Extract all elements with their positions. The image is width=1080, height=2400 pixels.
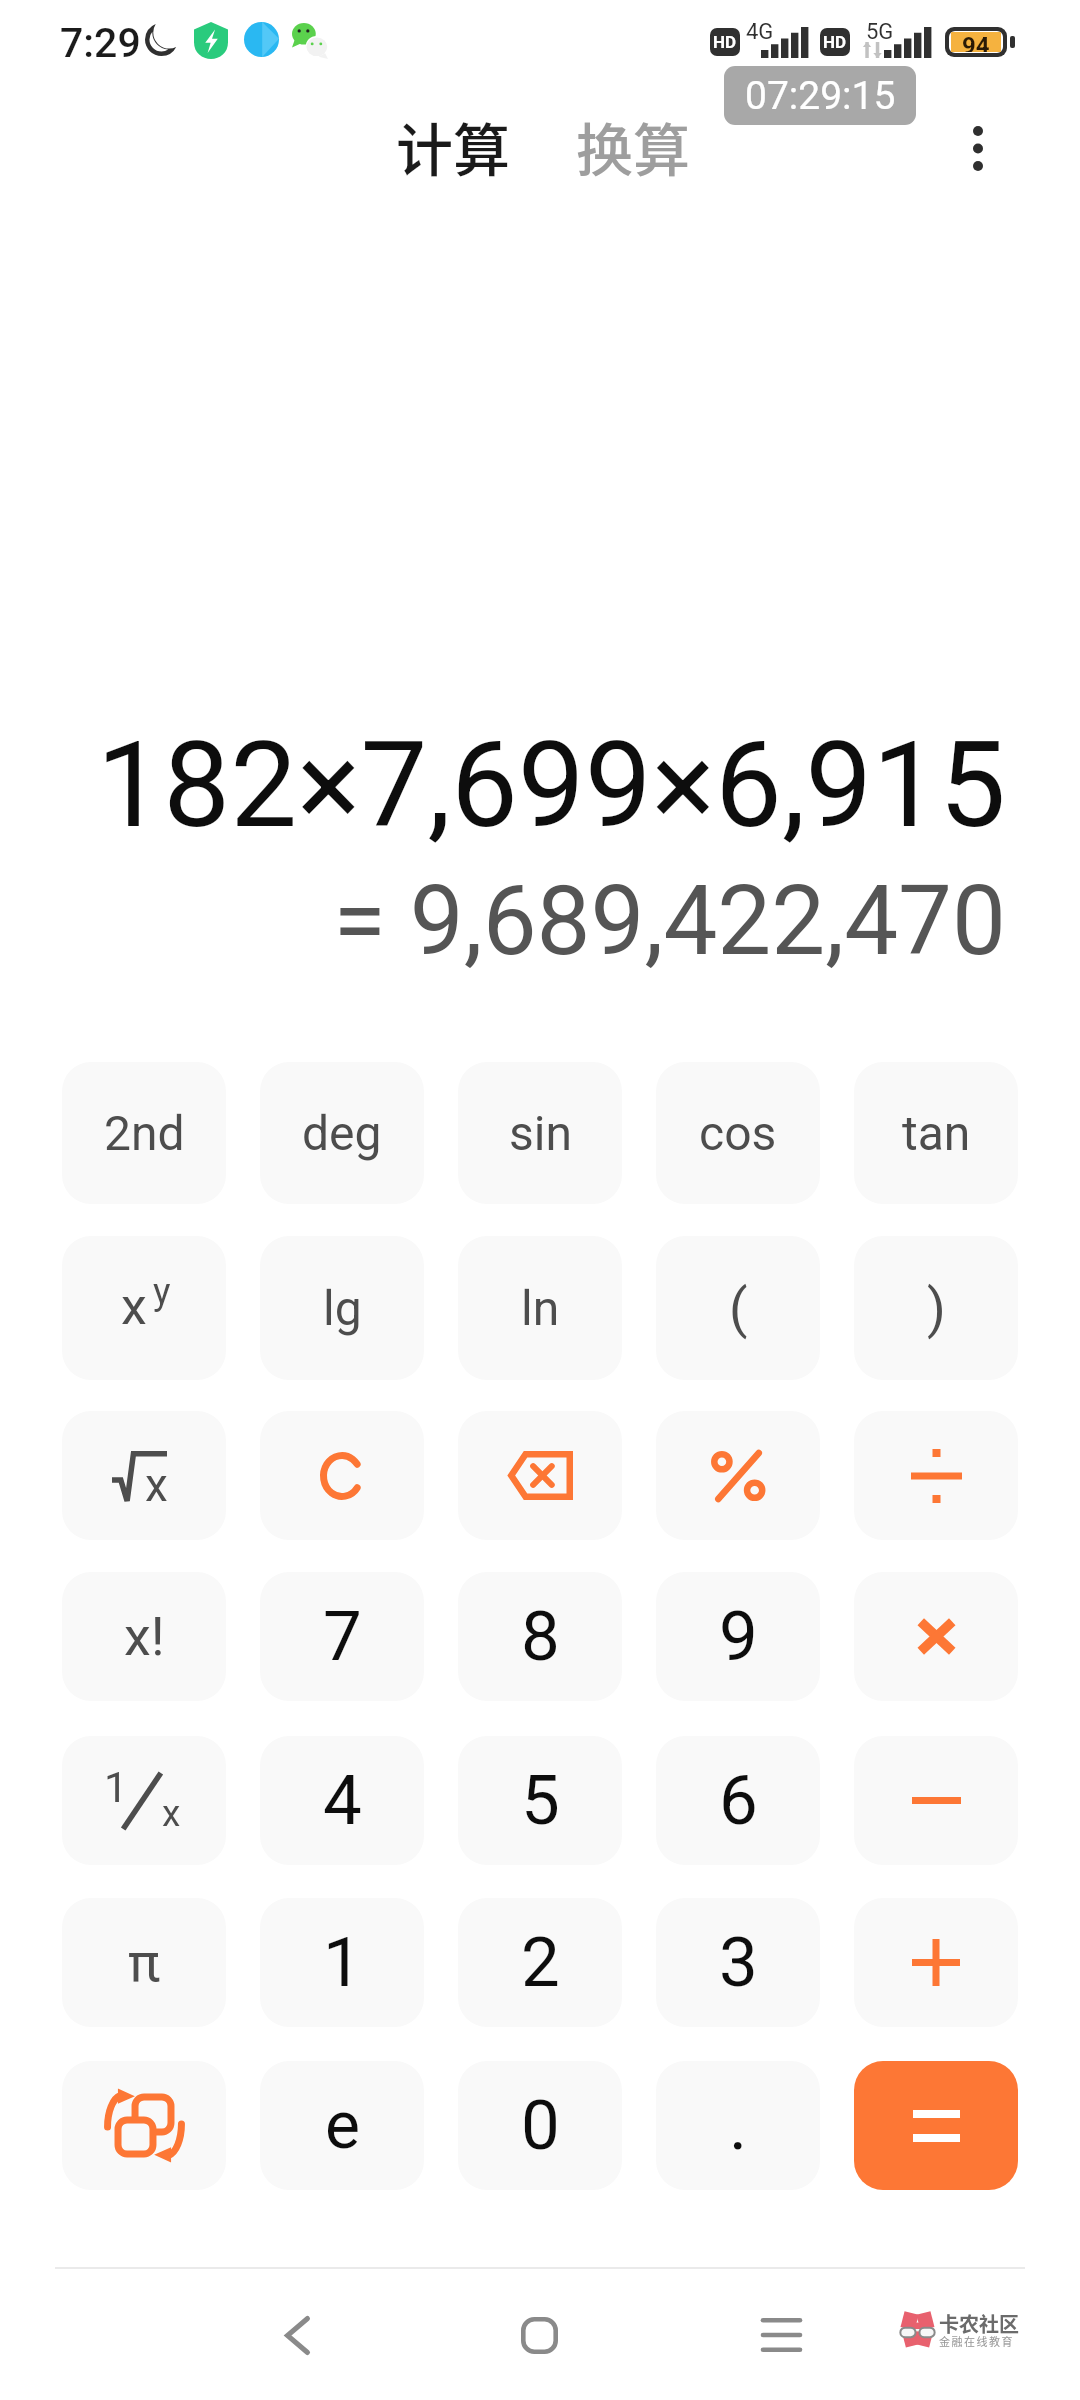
staticText: y xyxy=(153,1270,171,1313)
staticText: . xyxy=(729,2085,748,2166)
button[interactable]: Minus xyxy=(854,1736,1018,1865)
button[interactable]: 3 xyxy=(656,1898,820,2027)
staticText: 07:29:15 xyxy=(745,73,896,119)
button[interactable]: Plus xyxy=(854,1898,1018,2027)
button[interactable]: 计算 xyxy=(388,95,518,198)
button[interactable]: Divide xyxy=(854,1411,1018,1540)
button[interactable]: 2 xyxy=(458,1898,622,2027)
staticText: x xyxy=(145,1458,168,1512)
staticText: HD xyxy=(713,32,737,52)
staticText: x! xyxy=(124,1605,165,1668)
button[interactable]: Square root xyxy=(62,1411,226,1540)
staticText: x xyxy=(121,1276,147,1337)
staticText: 7 xyxy=(323,1596,362,1677)
staticText: 3 xyxy=(719,1922,758,2003)
button[interactable]: Backspace xyxy=(458,1411,622,1540)
button[interactable]: . xyxy=(656,2061,820,2190)
button[interactable]: Recent apps xyxy=(733,2287,829,2383)
staticText: 1 xyxy=(104,1763,128,1812)
button[interactable]: tan xyxy=(854,1062,1018,1204)
button[interactable]: 8 xyxy=(458,1572,622,1701)
button[interactable]: 1 xyxy=(260,1898,424,2027)
button[interactable]: cos xyxy=(656,1062,820,1204)
staticText: 2nd xyxy=(104,1105,185,1161)
staticText: cos xyxy=(699,1105,777,1161)
button[interactable]: Equals xyxy=(854,2061,1018,2190)
button[interactable]: π xyxy=(62,1898,226,2027)
staticText: x xyxy=(162,1792,181,1835)
button[interactable]: e xyxy=(260,2061,424,2190)
button[interactable]: Unit conversion xyxy=(62,2061,226,2190)
staticText: ( xyxy=(729,1277,748,1340)
button[interactable]: Home xyxy=(491,2287,587,2383)
staticText: ln xyxy=(521,1280,560,1336)
button[interactable]: x to the power of y xyxy=(62,1236,226,1380)
button[interactable]: 0 xyxy=(458,2061,622,2190)
staticText: 0 xyxy=(521,2085,560,2166)
button[interactable]: More options xyxy=(930,100,1026,196)
staticText: = 9,689,422,470 xyxy=(333,865,1006,978)
staticText: 换算 xyxy=(576,105,690,188)
staticText: deg xyxy=(302,1105,382,1161)
staticText: tan xyxy=(902,1105,971,1161)
staticText: 9 xyxy=(719,1596,758,1677)
button[interactable]: 9 xyxy=(656,1572,820,1701)
staticText: 94 xyxy=(962,32,990,52)
button[interactable]: one over x xyxy=(62,1736,226,1865)
button[interactable]: Clear xyxy=(260,1411,424,1540)
button[interactable]: 换算 xyxy=(568,95,698,198)
button[interactable]: lg xyxy=(260,1236,424,1380)
button[interactable]: x! xyxy=(62,1572,226,1701)
staticText: sin xyxy=(509,1105,572,1161)
staticText: e xyxy=(325,2087,360,2164)
button[interactable]: sin xyxy=(458,1062,622,1204)
button[interactable]: 2nd xyxy=(62,1062,226,1204)
button[interactable]: Back xyxy=(249,2287,345,2383)
staticText: 1 xyxy=(323,1922,362,2003)
staticText: 2 xyxy=(521,1922,560,2003)
button[interactable]: ( xyxy=(656,1236,820,1380)
staticText: ) xyxy=(927,1277,946,1340)
staticText: 6 xyxy=(719,1760,758,1841)
staticText: 计算 xyxy=(396,105,510,188)
button[interactable]: 7 xyxy=(260,1572,424,1701)
staticText: 182×7,699×6,915 xyxy=(96,716,1006,855)
button[interactable]: 5 xyxy=(458,1736,622,1865)
button[interactable]: 6 xyxy=(656,1736,820,1865)
button[interactable]: ln xyxy=(458,1236,622,1380)
staticText: 5 xyxy=(521,1760,560,1841)
staticText: 4G xyxy=(746,19,774,45)
button[interactable]: Percent xyxy=(656,1411,820,1540)
staticText: 5G xyxy=(866,19,894,45)
staticText: 4 xyxy=(323,1760,362,1841)
staticText: 卡农社区 xyxy=(939,2309,1019,2338)
button[interactable]: Multiply xyxy=(854,1572,1018,1701)
staticText: 7:29 xyxy=(60,19,141,67)
button[interactable]: 4 xyxy=(260,1736,424,1865)
staticText: HD xyxy=(823,32,847,52)
button[interactable]: deg xyxy=(260,1062,424,1204)
staticText: lg xyxy=(323,1280,362,1336)
staticText: π xyxy=(128,1931,161,1994)
staticText: 金融在线教育 xyxy=(939,2333,1014,2349)
button[interactable]: ) xyxy=(854,1236,1018,1380)
staticText: 8 xyxy=(521,1596,560,1677)
